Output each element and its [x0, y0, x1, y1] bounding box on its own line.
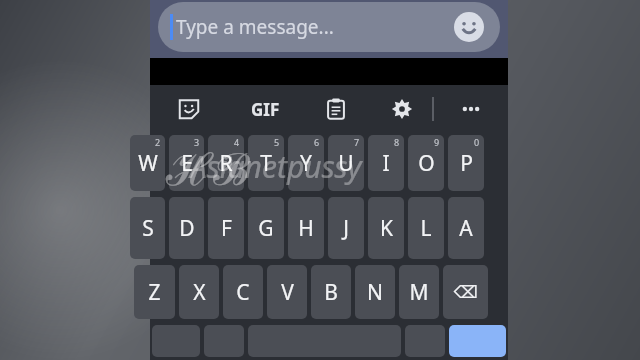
staticText: I: [382, 149, 390, 178]
staticText: U: [338, 149, 354, 178]
staticText: S: [142, 214, 154, 243]
staticText: Type a message...: [176, 14, 334, 40]
staticText: X: [193, 278, 206, 307]
staticText: 3: [194, 136, 200, 148]
staticText: D: [179, 214, 195, 243]
button[interactable]: K: [368, 197, 404, 259]
staticText: O: [418, 149, 435, 178]
staticText: 8: [394, 136, 400, 148]
staticText: G: [258, 214, 274, 243]
button[interactable]: More options: [454, 92, 488, 126]
button[interactable]: M: [399, 265, 439, 319]
staticText: V: [281, 278, 294, 307]
staticText: ⌫: [453, 282, 478, 302]
button[interactable]: D: [169, 197, 204, 259]
button[interactable]: V: [267, 265, 307, 319]
staticText: P: [460, 149, 473, 178]
button[interactable]: W: [130, 135, 165, 191]
button[interactable]: G: [248, 197, 284, 259]
button[interactable]: C: [223, 265, 263, 319]
button[interactable]: ⌫: [443, 265, 488, 319]
staticText: Z: [148, 278, 161, 307]
staticText: M: [409, 278, 429, 307]
button[interactable]: [405, 325, 445, 357]
staticText: E: [181, 149, 193, 178]
staticText: 9: [434, 136, 440, 148]
staticText: N: [367, 278, 383, 307]
staticText: F: [221, 214, 232, 243]
button[interactable]: O: [408, 135, 444, 191]
staticText: B: [324, 278, 338, 307]
button[interactable]: A: [448, 197, 484, 259]
staticText: A: [459, 214, 473, 243]
button[interactable]: P: [448, 135, 484, 191]
button[interactable]: Y: [288, 135, 324, 191]
staticText: 0: [474, 136, 480, 148]
button[interactable]: [152, 325, 200, 357]
staticText: Asianetpussy: [190, 146, 362, 187]
button[interactable]: N: [355, 265, 395, 319]
staticText: 7: [354, 136, 360, 148]
button[interactable]: I: [368, 135, 404, 191]
staticText: R: [219, 149, 233, 178]
staticText: K: [380, 214, 393, 243]
staticText: L: [420, 214, 432, 243]
button[interactable]: Z: [134, 265, 175, 319]
button[interactable]: S: [130, 197, 165, 259]
button[interactable]: R: [208, 135, 244, 191]
staticText: 6: [314, 136, 320, 148]
button[interactable]: Emoji: [454, 12, 484, 42]
button[interactable]: L: [408, 197, 444, 259]
button[interactable]: X: [179, 265, 219, 319]
button[interactable]: U: [328, 135, 364, 191]
staticText: GIF: [251, 98, 280, 121]
staticText: C: [236, 278, 250, 307]
staticText: J: [343, 214, 349, 243]
staticText: ℋℬ: [166, 138, 251, 198]
staticText: H: [298, 214, 314, 243]
button[interactable]: Clipboard: [319, 92, 353, 126]
button[interactable]: Stickers: [172, 92, 206, 126]
button[interactable]: F: [208, 197, 244, 259]
button[interactable]: Type a message...: [158, 2, 500, 52]
staticText: 4: [234, 136, 240, 148]
button[interactable]: T: [248, 135, 284, 191]
staticText: 5: [274, 136, 280, 148]
button[interactable]: B: [311, 265, 351, 319]
staticText: W: [138, 149, 158, 178]
staticText: Y: [300, 149, 312, 178]
staticText: T: [260, 149, 272, 178]
button[interactable]: E: [169, 135, 204, 191]
staticText: 2: [155, 136, 161, 148]
button[interactable]: Send: [449, 325, 506, 357]
button[interactable]: GIF: [243, 92, 287, 126]
button[interactable]: Settings: [385, 92, 419, 126]
button[interactable]: H: [288, 197, 324, 259]
button[interactable]: J: [328, 197, 364, 259]
button[interactable]: [204, 325, 244, 357]
